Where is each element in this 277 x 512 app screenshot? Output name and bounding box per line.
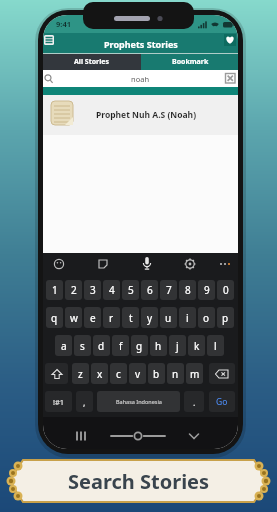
button[interactable]: 6 — [141, 280, 158, 300]
staticText: , — [83, 396, 86, 408]
staticText: p — [222, 311, 229, 325]
staticText: v — [135, 367, 141, 381]
button[interactable]: t — [122, 307, 139, 328]
staticText: 0 — [223, 283, 229, 297]
staticText: a — [61, 339, 67, 353]
staticText: n — [172, 367, 179, 381]
button[interactable]: e — [84, 307, 101, 328]
button[interactable]: Search Stories — [0, 455, 277, 507]
button[interactable]: u — [160, 307, 177, 328]
staticText: !#1 — [53, 397, 65, 407]
staticText: Bookmark — [172, 57, 209, 67]
button[interactable]: v — [129, 363, 146, 384]
button[interactable]: 4 — [103, 280, 120, 300]
button[interactable] — [224, 34, 236, 46]
button[interactable]: z — [72, 363, 89, 384]
staticText: 2 — [71, 283, 77, 297]
staticText: 9 — [204, 283, 210, 297]
staticText: r — [109, 311, 114, 325]
button[interactable]: w — [65, 307, 82, 328]
staticText: 7 — [166, 283, 172, 297]
staticText: f — [119, 339, 123, 353]
button[interactable]: b — [148, 363, 165, 384]
staticText: Go — [216, 396, 228, 408]
button[interactable]: Bahasa Indonesia — [97, 391, 180, 412]
button[interactable]: o — [198, 307, 215, 328]
button[interactable]: , — [76, 391, 93, 412]
button[interactable]: k — [188, 335, 205, 356]
staticText: x — [97, 367, 103, 381]
button[interactable]: x — [91, 363, 108, 384]
button[interactable] — [43, 54, 141, 70]
staticText: Prophet Nuh A.S (Noah) — [96, 109, 197, 121]
staticText: b — [153, 367, 160, 381]
button[interactable] — [43, 95, 238, 135]
button[interactable] — [97, 258, 109, 270]
button[interactable]: 9 — [198, 280, 215, 300]
staticText: s — [80, 339, 85, 353]
button[interactable]: 1 — [46, 280, 63, 300]
button[interactable] — [141, 54, 238, 70]
button[interactable]: l — [207, 335, 224, 356]
button[interactable] — [43, 70, 238, 87]
button[interactable] — [225, 73, 236, 84]
button[interactable]: 7 — [160, 280, 177, 300]
button[interactable]: 5 — [122, 280, 139, 300]
button[interactable]: 3 — [84, 280, 101, 300]
button[interactable]: i — [179, 307, 196, 328]
button[interactable]: c — [110, 363, 127, 384]
button[interactable]: g — [131, 335, 148, 356]
button[interactable] — [53, 258, 65, 270]
button[interactable]: . — [184, 391, 204, 412]
button[interactable]: m — [186, 363, 203, 384]
button[interactable]: 0 — [217, 280, 234, 300]
staticText: j — [176, 339, 179, 353]
staticText: 6 — [147, 283, 153, 297]
staticText: 3 — [90, 283, 96, 297]
button[interactable]: q — [46, 307, 63, 328]
staticText: noah — [131, 74, 150, 84]
staticText: Search Stories — [68, 468, 210, 495]
staticText: All Stories — [74, 57, 110, 67]
button[interactable] — [107, 430, 169, 442]
staticText: t — [129, 311, 133, 325]
staticText: 5 — [128, 283, 134, 297]
staticText: z — [78, 367, 83, 381]
staticText: c — [116, 367, 121, 381]
button[interactable] — [74, 430, 88, 442]
button[interactable]: d — [93, 335, 110, 356]
staticText: h — [155, 339, 162, 353]
staticText: 1 — [52, 283, 58, 297]
button[interactable] — [45, 363, 68, 384]
button[interactable] — [184, 258, 196, 270]
staticText: o — [203, 311, 210, 325]
button[interactable] — [44, 35, 54, 45]
button[interactable] — [219, 260, 231, 268]
button[interactable]: j — [169, 335, 186, 356]
staticText: y — [147, 311, 153, 325]
button[interactable]: r — [103, 307, 120, 328]
button[interactable]: n — [167, 363, 184, 384]
button[interactable]: a — [55, 335, 72, 356]
button[interactable] — [141, 256, 153, 271]
staticText: i — [186, 311, 189, 325]
staticText: Prophets Stories — [104, 38, 178, 50]
button[interactable]: h — [150, 335, 167, 356]
button[interactable]: !#1 — [45, 391, 72, 412]
staticText: m — [190, 367, 200, 381]
staticText: d — [98, 339, 105, 353]
button[interactable]: 8 — [179, 280, 196, 300]
button[interactable]: y — [141, 307, 158, 328]
staticText: 8 — [185, 283, 191, 297]
button[interactable]: 2 — [65, 280, 82, 300]
button[interactable] — [209, 363, 235, 384]
button[interactable]: Go — [209, 391, 235, 412]
button[interactable]: p — [217, 307, 234, 328]
staticText: l — [214, 339, 217, 353]
staticText: g — [136, 339, 143, 353]
staticText: u — [165, 311, 172, 325]
button[interactable]: f — [112, 335, 129, 356]
button[interactable] — [187, 430, 201, 442]
staticText: Bahasa Indonesia — [116, 398, 162, 405]
button[interactable]: s — [74, 335, 91, 356]
